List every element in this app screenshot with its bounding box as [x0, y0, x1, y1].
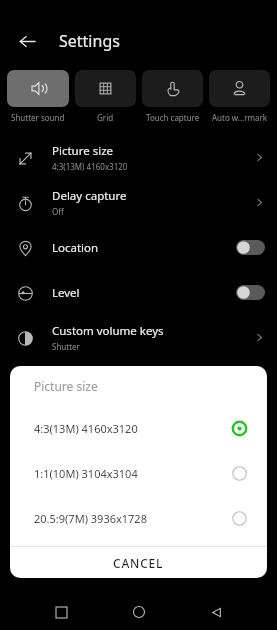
button[interactable]: Back [199, 595, 233, 629]
button[interactable]: Picture size [0, 135, 277, 180]
staticText: Picture size [34, 378, 98, 394]
staticText: 20.5:9(7M) 3936x1728 [34, 511, 232, 526]
staticText: Shutter [52, 341, 80, 352]
button[interactable]: Touch capture [142, 70, 203, 123]
button[interactable]: 20.5:9(7M) 3936x1728 [10, 496, 267, 541]
button[interactable]: Recents [44, 595, 78, 629]
staticText: Location [52, 240, 236, 256]
button[interactable]: Custom volume keys [0, 315, 277, 360]
staticText: 4:3(13M) 4160x3120 [52, 161, 128, 172]
staticText: Custom volume keys [52, 323, 164, 339]
staticText: CANCEL [113, 555, 164, 571]
button[interactable]: Shutter sound [7, 70, 69, 123]
staticText: Grid [97, 112, 114, 123]
button[interactable]: Auto w...rmark [209, 70, 270, 123]
button[interactable]: Delay capture [0, 180, 277, 225]
staticText: Picture size [52, 143, 114, 159]
staticText: 1:1(10M) 3104x3104 [34, 466, 232, 481]
staticText: Level [52, 285, 236, 301]
button[interactable]: Level [0, 270, 277, 315]
staticText: Touch capture [146, 112, 200, 123]
button[interactable]: CANCEL [10, 547, 267, 578]
staticText: Delay capture [52, 188, 127, 204]
staticText: 4:3(13M) 4160x3120 [34, 421, 232, 436]
staticText: Off [52, 206, 64, 217]
button[interactable]: Location [0, 225, 277, 270]
button[interactable]: Grid [75, 70, 136, 123]
staticText: Auto w...rmark [212, 112, 268, 123]
button[interactable]: 1:1(10M) 3104x3104 [10, 451, 267, 496]
staticText: Shutter sound [11, 112, 65, 123]
button[interactable]: Back [12, 26, 42, 56]
button[interactable]: Home [122, 595, 156, 629]
staticText: Settings [59, 30, 120, 52]
button[interactable]: 4:3(13M) 4160x3120 [10, 406, 267, 451]
